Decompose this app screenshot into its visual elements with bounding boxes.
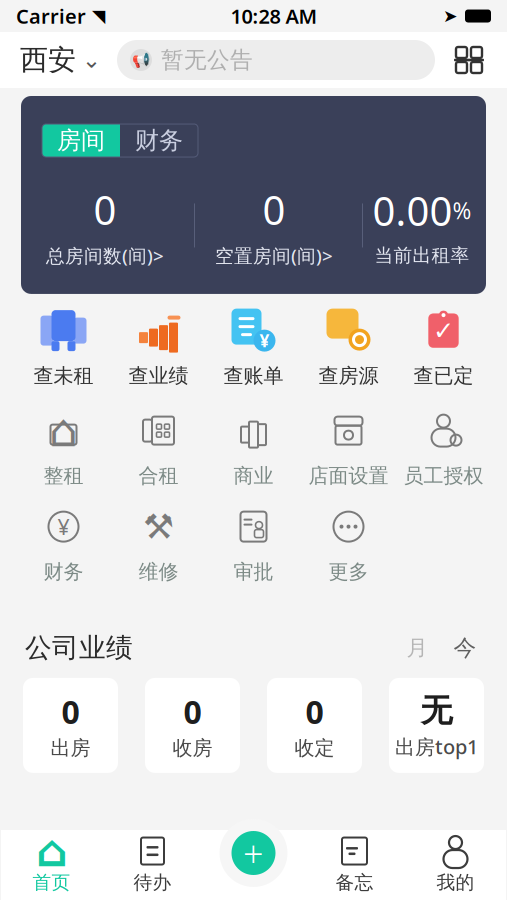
staticText: 我的 [436, 871, 474, 894]
staticText: 商业 [233, 464, 273, 488]
staticText: 合租 [138, 464, 178, 488]
staticText: 查业绩 [128, 364, 188, 388]
staticText: ⌄ [82, 47, 101, 73]
button[interactable]: ¥ [16, 502, 111, 586]
staticText: 0 [262, 183, 285, 236]
staticText: ◥ [92, 6, 105, 26]
staticText: 公司业绩 [25, 631, 133, 664]
button[interactable]: 审批 [206, 502, 301, 586]
staticText: 查未租 [33, 364, 93, 388]
button[interactable]: 查业绩 [111, 306, 206, 390]
button[interactable]: 房间 [42, 124, 120, 157]
staticText: 查账单 [223, 364, 283, 388]
staticText: 暂无公告 [161, 46, 253, 74]
staticText: 审批 [233, 560, 273, 584]
staticText: 查已定 [413, 364, 473, 388]
button[interactable]: 店面设置 [301, 406, 396, 490]
staticText: 财务 [43, 560, 83, 584]
button[interactable]: 0 [267, 678, 362, 773]
button[interactable]: ⌂ [16, 406, 111, 490]
staticText: Carrier [16, 3, 86, 29]
button[interactable]: 我的 [405, 830, 506, 900]
button[interactable]: 财务 [120, 124, 198, 157]
staticText: 月 [406, 635, 427, 661]
button[interactable]: 合租 [111, 406, 206, 490]
button[interactable]: 查房源 [301, 306, 396, 390]
staticText: 0 [93, 183, 116, 236]
button[interactable]: 员工授权 [396, 406, 491, 490]
staticText: ¥ [57, 512, 69, 541]
button[interactable]: 新建 [219, 819, 287, 887]
button[interactable]: 月 [400, 631, 434, 665]
staticText: ⚒ [143, 507, 174, 546]
button[interactable]: 0 [195, 183, 362, 268]
staticText: 10:28 AM [230, 3, 317, 29]
button[interactable]: 扫一扫 [447, 38, 491, 82]
staticText: ⌂ [49, 405, 78, 456]
staticText: 0.00 [372, 184, 452, 237]
staticText: 空置房间(间)> [215, 243, 333, 268]
staticText: 无 [420, 691, 452, 730]
button[interactable]: 今 [448, 631, 482, 665]
button[interactable]: ⌂ [1, 830, 102, 900]
staticText: 收房 [172, 736, 212, 760]
staticText: 出房 [50, 736, 90, 760]
button[interactable]: ⚒ [111, 502, 206, 586]
button[interactable]: 📢 [117, 40, 435, 80]
staticText: 首页 [32, 871, 70, 894]
staticText: 查房源 [318, 364, 378, 388]
staticText: 待办 [133, 871, 171, 894]
staticText: 西安 [20, 43, 76, 77]
staticText: 收定 [294, 736, 334, 760]
button[interactable]: 0 [23, 678, 118, 773]
staticText: 当前出租率 [374, 244, 469, 267]
staticText: ⌂ [36, 826, 67, 876]
staticText: 总房间数(间)> [46, 243, 164, 268]
button[interactable]: ¥ [206, 306, 301, 390]
staticText: 财务 [135, 126, 183, 155]
staticText: 店面设置 [308, 464, 388, 488]
button[interactable]: 0 [26, 183, 194, 268]
button[interactable]: 无 [389, 678, 484, 773]
staticText: 维修 [138, 560, 178, 584]
staticText: 房间 [57, 126, 105, 155]
button[interactable]: 待办 [102, 830, 203, 900]
button[interactable]: ✓ [396, 306, 491, 390]
staticText: + [243, 829, 264, 877]
staticText: 0 [183, 690, 201, 733]
staticText: % [452, 195, 471, 225]
staticText: 员工授权 [403, 464, 483, 488]
staticText: 更多 [328, 560, 368, 584]
staticText: ¥ [259, 329, 269, 352]
staticText: ✓ [433, 316, 454, 345]
staticText: 0 [305, 690, 323, 733]
staticText: 0 [61, 690, 79, 733]
staticText: 今 [453, 634, 476, 662]
button[interactable]: 查未租 [16, 306, 111, 390]
button[interactable]: 商业 [206, 406, 301, 490]
staticText: 备忘 [335, 871, 373, 894]
staticText: 📢 [132, 52, 150, 68]
staticText: ➤ [443, 6, 458, 26]
button[interactable]: 备忘 [304, 830, 405, 900]
button[interactable]: 更多 [301, 502, 396, 586]
staticText: 出房top1 [395, 733, 478, 760]
button[interactable]: 0 [145, 678, 240, 773]
staticText: 整租 [43, 464, 83, 488]
button[interactable]: 西安 [16, 38, 105, 82]
